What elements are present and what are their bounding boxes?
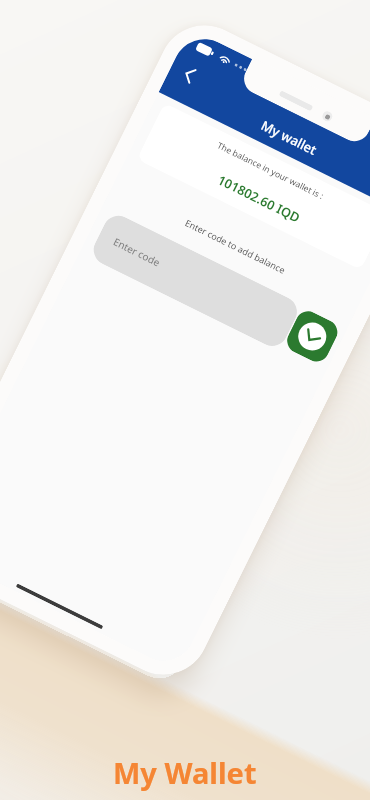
- staticText: Enter code: [111, 234, 163, 270]
- button[interactable]: Enter code: [88, 210, 302, 351]
- staticText: The balance in your wallet is :: [156, 110, 370, 231]
- button[interactable]: Confirm: [283, 307, 342, 366]
- button[interactable]: Back: [168, 53, 211, 96]
- staticText: Enter code to add balance: [110, 180, 361, 312]
- staticText: My Wallet: [113, 753, 257, 792]
- staticText: 101802.60 IQD: [132, 130, 370, 266]
- staticText: My wallet: [162, 69, 370, 206]
